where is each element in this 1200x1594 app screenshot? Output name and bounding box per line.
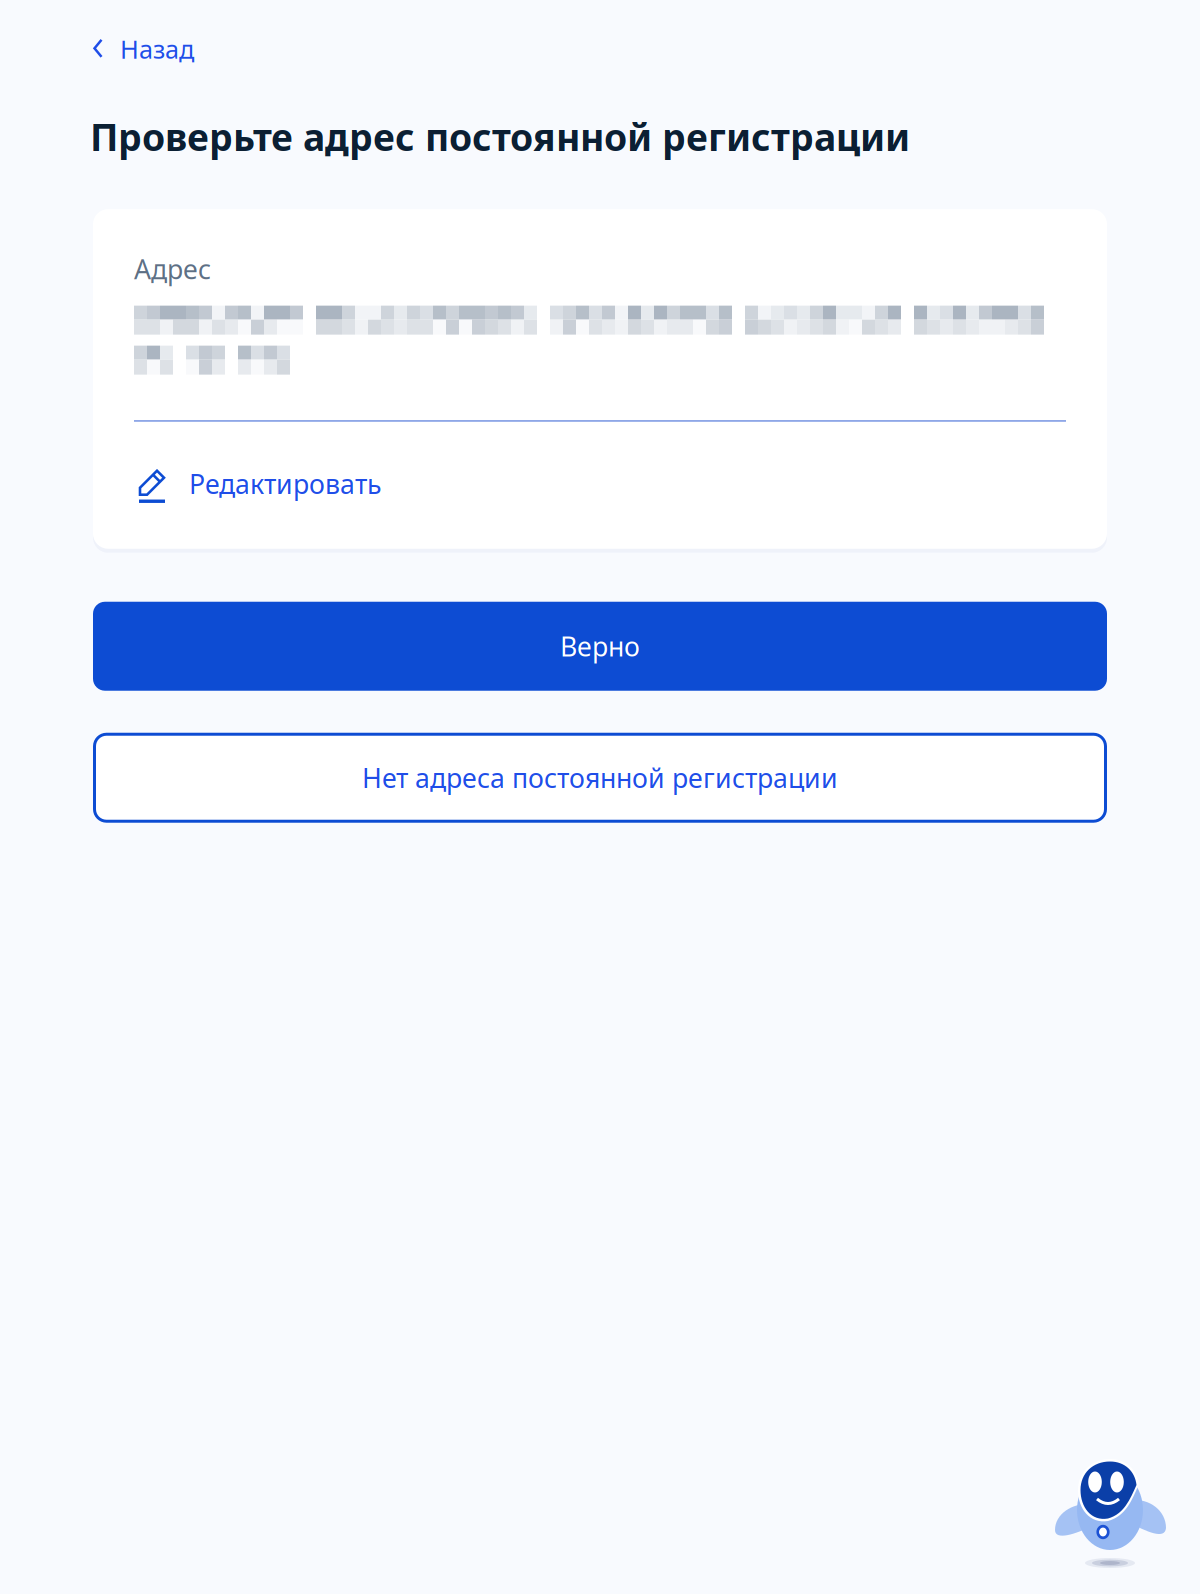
button[interactable]: Верно	[93, 602, 1107, 691]
button[interactable]: Редактировать	[134, 459, 382, 509]
staticText: Назад	[120, 32, 194, 66]
button[interactable]: Назад	[89, 24, 198, 74]
staticText: Проверьте адрес постоянной регистрации	[90, 112, 910, 161]
staticText: Нет адреса постоянной регистрации	[362, 760, 838, 795]
button[interactable]: Помощник Макс	[1050, 1454, 1174, 1578]
button[interactable]: Нет адреса постоянной регистрации	[93, 733, 1107, 823]
staticText: Адрес	[134, 251, 211, 287]
staticText: Верно	[560, 628, 640, 664]
staticText: Редактировать	[189, 466, 382, 501]
